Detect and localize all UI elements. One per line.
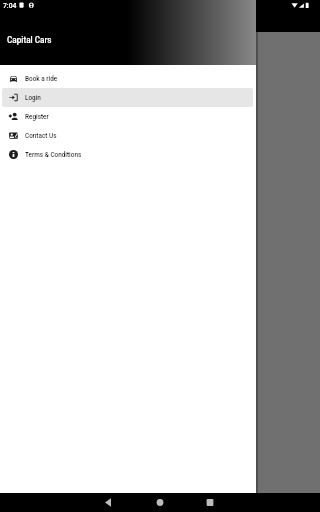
button[interactable]: Book a ride (2, 69, 253, 88)
button[interactable]: Home (140, 493, 180, 512)
other: Contact Us (9, 131, 18, 140)
staticText: 7:04 (3, 2, 17, 10)
other: Login (9, 93, 18, 102)
staticText: Contact Us (25, 132, 57, 140)
button[interactable]: Terms & Conditions (2, 145, 253, 164)
button[interactable]: Contact Us (2, 126, 253, 145)
other: Book a ride (9, 74, 18, 83)
staticText: Terms & Conditions (25, 151, 82, 159)
staticText: Capital Cars (7, 35, 52, 45)
button[interactable]: Login (2, 88, 253, 107)
button[interactable]: Register (2, 107, 253, 126)
button[interactable]: Back (88, 493, 128, 512)
staticText: Register (25, 113, 49, 121)
other: Terms & Conditions (9, 150, 18, 159)
staticText: Login (25, 94, 41, 102)
other: Register (9, 112, 18, 121)
button[interactable]: Recent apps (190, 493, 230, 512)
staticText: Book a ride (25, 75, 58, 83)
